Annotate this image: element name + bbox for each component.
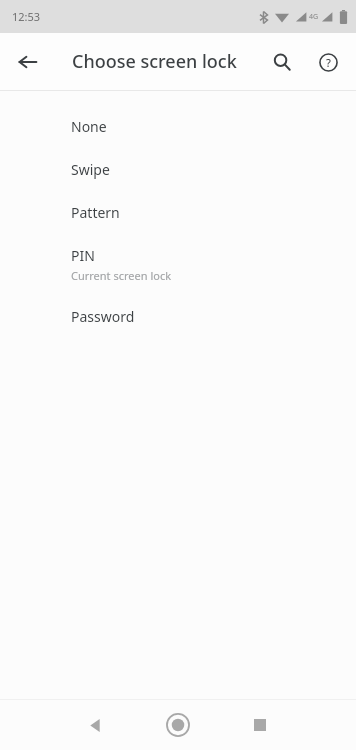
button[interactable]: Swipe bbox=[0, 148, 356, 191]
button[interactable]: Help bbox=[310, 44, 346, 80]
button[interactable]: Recent apps bbox=[243, 708, 277, 742]
staticText: ? bbox=[326, 55, 331, 70]
button[interactable]: PIN bbox=[0, 234, 356, 295]
staticText: 12:53 bbox=[12, 9, 41, 24]
button[interactable]: Back bbox=[10, 44, 46, 80]
button[interactable]: Home bbox=[161, 708, 195, 742]
staticText: None bbox=[71, 117, 107, 136]
staticText: Swipe bbox=[71, 160, 110, 179]
staticText: 4G bbox=[309, 12, 319, 22]
staticText: Password bbox=[71, 307, 135, 326]
staticText: PIN bbox=[71, 246, 95, 265]
staticText: Choose screen lock bbox=[72, 49, 237, 74]
button[interactable]: Pattern bbox=[0, 191, 356, 234]
staticText: Current screen lock bbox=[71, 268, 172, 283]
button[interactable]: Password bbox=[0, 295, 356, 338]
button[interactable]: None bbox=[0, 105, 356, 148]
button[interactable]: Back bbox=[78, 708, 112, 742]
button[interactable]: Search bbox=[264, 44, 300, 80]
staticText: Pattern bbox=[71, 203, 120, 222]
